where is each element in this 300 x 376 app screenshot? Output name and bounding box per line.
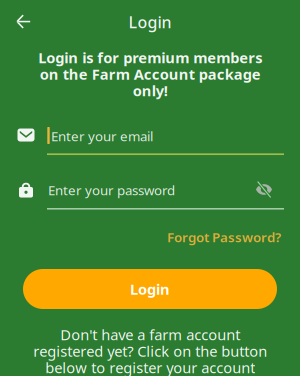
staticText: Login: [130, 279, 170, 299]
staticText: Login is for premium members on the Farm…: [38, 48, 262, 100]
button[interactable]: Back: [3, 2, 43, 42]
staticText: Enter your password: [48, 181, 175, 199]
staticText: Forgot Password?: [167, 228, 281, 246]
button[interactable]: Forgot Password?: [157, 226, 281, 248]
button[interactable]: Show password: [249, 176, 279, 202]
button[interactable]: Login: [23, 269, 277, 309]
staticText: Don't have a farm account registered yet…: [33, 325, 267, 376]
staticText: Login: [128, 11, 171, 33]
staticText: Enter your email: [51, 127, 153, 145]
